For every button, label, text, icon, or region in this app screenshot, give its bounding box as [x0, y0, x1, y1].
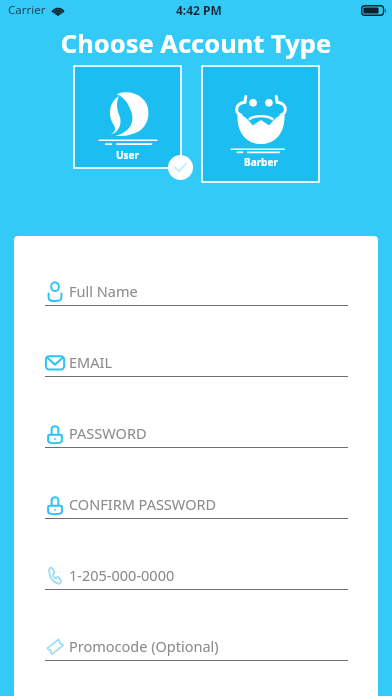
button[interactable]: CONFIRM PASSWORD: [45, 490, 348, 518]
staticText: User: [116, 148, 140, 162]
button[interactable]: 1-205-000-0000: [45, 561, 348, 589]
staticText: Promocode (Optional): [69, 636, 219, 656]
button[interactable]: PASSWORD: [45, 419, 348, 447]
button[interactable]: EMAIL: [45, 348, 348, 376]
staticText: PASSWORD: [69, 423, 147, 443]
staticText: Choose Account Type: [0, 26, 392, 61]
staticText: Barber: [244, 155, 278, 169]
button[interactable]: Promocode (Optional): [45, 632, 348, 660]
staticText: CONFIRM PASSWORD: [69, 494, 217, 514]
button[interactable]: User: [74, 66, 181, 168]
staticText: Carrier: [8, 2, 46, 18]
staticText: 1-205-000-0000: [69, 565, 175, 585]
staticText: Full Name: [69, 281, 138, 301]
other: Selected: [168, 155, 193, 180]
button[interactable]: Full Name: [45, 277, 348, 305]
staticText: EMAIL: [69, 352, 112, 372]
button[interactable]: Barber: [202, 66, 319, 182]
staticText: 4:42 PM: [176, 2, 222, 18]
